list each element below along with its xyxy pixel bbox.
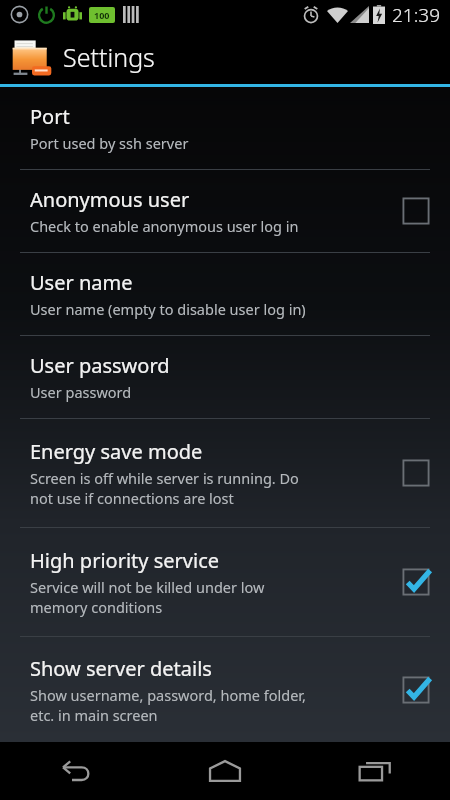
button[interactable]: Home	[150, 742, 300, 800]
button[interactable]: Show server details	[0, 637, 450, 742]
staticText: Show username, password, home folder,	[30, 685, 306, 705]
button[interactable]: User password	[0, 336, 450, 418]
button[interactable]: Checked	[399, 565, 433, 599]
staticText: Port	[30, 103, 70, 130]
staticText: User password	[30, 352, 170, 379]
staticText: memory conditions	[30, 597, 163, 617]
staticText: User password	[30, 382, 132, 402]
staticText: Anonymous user	[30, 186, 190, 213]
staticText: Screen is off while server is running. D…	[30, 468, 299, 488]
staticText: not use if connections are lost	[30, 488, 234, 508]
staticText: High priority service	[30, 547, 220, 574]
button[interactable]: Unchecked	[399, 194, 433, 228]
staticText: Settings	[63, 40, 155, 74]
staticText: Port used by ssh server	[30, 133, 189, 153]
button[interactable]: Unchecked	[399, 456, 433, 490]
staticText: Show server details	[30, 655, 212, 682]
staticText: Service will not be killed under low	[30, 577, 265, 597]
staticText: 100	[94, 9, 110, 21]
staticText: 21:39	[392, 2, 441, 28]
button[interactable]: App icon	[0, 29, 450, 84]
button[interactable]: High priority service	[0, 528, 450, 636]
staticText: User name	[30, 269, 133, 296]
button[interactable]: Anonymous user	[0, 170, 450, 252]
button[interactable]: Port	[0, 87, 450, 169]
button[interactable]: Checked	[399, 673, 433, 707]
staticText: Energy save mode	[30, 438, 203, 465]
button[interactable]: Recent apps	[300, 742, 450, 800]
button[interactable]: Back	[0, 742, 150, 800]
staticText: User name (empty to disable user log in)	[30, 299, 306, 319]
staticText: etc. in main screen	[30, 705, 158, 725]
staticText: Check to enable anonymous user log in	[30, 216, 299, 236]
other: App icon	[9, 34, 55, 80]
button[interactable]: User name	[0, 253, 450, 335]
button[interactable]: Energy save mode	[0, 419, 450, 527]
